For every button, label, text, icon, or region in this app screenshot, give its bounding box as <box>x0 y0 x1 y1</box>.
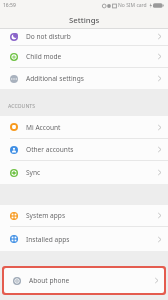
staticText: Other accounts <box>26 145 74 154</box>
staticText: Mi Account <box>26 123 61 132</box>
staticText: 16:59 <box>3 2 16 9</box>
staticText: Installed apps <box>26 235 70 244</box>
staticText: Child mode <box>26 52 62 61</box>
staticText: Do not disturb <box>26 32 71 41</box>
staticText: No SIM card <box>118 2 147 9</box>
staticText: About phone <box>29 276 70 285</box>
staticText: Sync <box>26 168 41 177</box>
button[interactable]: About phone <box>4 268 164 293</box>
staticText: ACCOUNTS <box>8 102 36 109</box>
button[interactable]: System apps <box>0 205 168 226</box>
button[interactable]: Additional settings <box>0 68 168 89</box>
button[interactable]: Sync <box>0 161 168 184</box>
staticText: System apps <box>26 211 66 220</box>
button[interactable]: Do not disturb <box>0 29 168 44</box>
button[interactable]: Other accounts <box>0 139 168 160</box>
button[interactable]: Child mode <box>0 46 168 67</box>
button[interactable]: Mi Account <box>0 116 168 138</box>
button[interactable]: Installed apps <box>0 227 168 251</box>
staticText: Additional settings <box>26 74 84 83</box>
staticText: Settings <box>69 15 100 26</box>
